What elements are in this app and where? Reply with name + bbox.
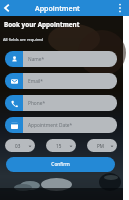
button[interactable]: 15: [46, 139, 76, 152]
staticText: Book your Appointment: [4, 20, 80, 29]
staticText: All fields are required: [3, 37, 43, 42]
staticText: Phone*: [28, 100, 46, 107]
button[interactable]: More options: [113, 1, 127, 15]
button[interactable]: PM: [87, 139, 117, 152]
staticText: 15: [56, 143, 62, 149]
button[interactable]: Name*: [5, 51, 117, 67]
staticText: 03: [15, 143, 21, 149]
button[interactable]: Email*: [5, 73, 117, 89]
button[interactable]: Phone*: [5, 95, 117, 111]
staticText: PM: [97, 143, 104, 149]
button[interactable]: Back: [0, 1, 14, 15]
staticText: Name*: [28, 56, 45, 63]
staticText: Appointment Date*: [28, 122, 73, 129]
button[interactable]: Confirm: [6, 157, 115, 172]
staticText: Appointment: [35, 3, 80, 13]
staticText: Confirm: [51, 161, 70, 168]
button[interactable]: 03: [5, 139, 35, 152]
staticText: Email*: [28, 78, 43, 85]
button[interactable]: Appointment Date*: [5, 117, 117, 133]
